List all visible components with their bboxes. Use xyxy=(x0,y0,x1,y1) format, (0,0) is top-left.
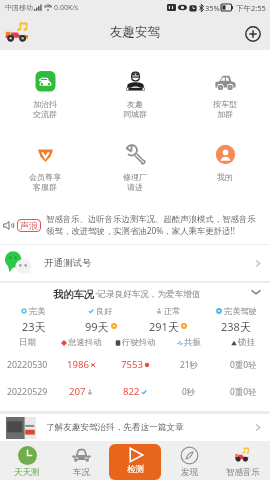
button[interactable]: 声浪 xyxy=(3,206,268,244)
staticText: 207 xyxy=(69,385,86,398)
staticText: 日期 xyxy=(19,337,36,348)
staticText: 1986 xyxy=(67,358,89,371)
staticText: 7553 xyxy=(121,358,143,371)
staticText: ·记录良好车况，为爱车增值 xyxy=(95,288,201,300)
staticText: 领驾，改进驾驶，实测省油20%，家人乘车更舒适!! xyxy=(46,225,235,236)
button[interactable]: Add xyxy=(245,26,261,42)
staticText: 声浪 xyxy=(20,220,38,231)
staticText: 我的 xyxy=(217,172,233,182)
button[interactable]: 修理厂 xyxy=(90,123,180,195)
staticText: 完美驾驶 xyxy=(224,306,257,316)
button[interactable]: 了解友趣安驾治抖，先看这一篇文章 xyxy=(6,414,262,441)
staticText: 0秒 xyxy=(182,386,196,397)
staticText: 智感音乐 xyxy=(226,467,260,478)
staticText: 21秒 xyxy=(180,359,198,370)
staticText: 良好 xyxy=(96,306,113,316)
button[interactable]: 发现 xyxy=(162,441,216,480)
staticText: 0重0轻 xyxy=(230,386,257,397)
button[interactable]: 按车型 xyxy=(180,50,270,123)
staticText: 同城群 xyxy=(123,109,147,119)
staticText: 完美 xyxy=(29,306,46,316)
staticText: 0重0轻 xyxy=(230,359,257,370)
button[interactable]: 我的 xyxy=(180,123,270,195)
button[interactable]: Collapse xyxy=(250,288,262,296)
staticText: 请进 xyxy=(127,182,143,192)
staticText: 智感音乐、边听音乐边测车况、超酷声浪模式，智感音乐 xyxy=(46,214,256,225)
staticText: 怠速抖动 xyxy=(68,337,102,348)
staticText: 加治抖 xyxy=(33,99,57,109)
staticText: 共振 xyxy=(184,337,201,348)
staticText: 99天 xyxy=(85,319,109,333)
staticText: 交流群 xyxy=(33,109,57,119)
staticText: 车况 xyxy=(73,467,90,478)
button[interactable]: 会员尊享 xyxy=(0,123,90,195)
staticText: 友趣安驾 xyxy=(110,24,160,40)
staticText: 了解友趣安驾治抖，先看这一篇文章 xyxy=(46,422,184,433)
staticText: 发现 xyxy=(181,467,198,478)
staticText: 按车型 xyxy=(213,99,237,109)
staticText: 修理厂 xyxy=(123,172,147,182)
button[interactable]: 车况 xyxy=(54,441,108,480)
staticText: 开通测试号 xyxy=(44,257,92,269)
button[interactable]: 天天测 xyxy=(0,441,54,480)
staticText: 客服群 xyxy=(33,182,57,192)
button[interactable]: 加治抖 xyxy=(0,50,90,123)
staticText: 23天 xyxy=(22,319,46,333)
staticText: 我的车况 xyxy=(53,288,94,301)
staticText: 加群 xyxy=(217,109,233,119)
button[interactable]: 20220530 xyxy=(0,351,270,378)
button[interactable]: 智感音乐 xyxy=(216,441,270,480)
staticText: 检测 xyxy=(127,464,144,475)
staticText: 锁挂 xyxy=(238,337,255,348)
staticText: 35% xyxy=(205,3,220,13)
staticText: 行驶抖动 xyxy=(122,337,156,348)
staticText: 下午2:55 xyxy=(236,3,266,13)
staticText: 0.00K/s xyxy=(54,3,79,13)
staticText: 822 xyxy=(123,385,140,398)
button[interactable]: 20220529 xyxy=(0,378,270,405)
staticText: 238天 xyxy=(221,319,251,333)
staticText: 正常 xyxy=(164,306,181,316)
staticText: 天天测 xyxy=(14,467,40,478)
staticText: 友趣 xyxy=(127,99,143,109)
button[interactable]: 检测 xyxy=(109,444,161,480)
staticText: 中国移动 xyxy=(5,3,33,12)
staticText: 会员尊享 xyxy=(29,172,61,182)
staticText: 20220530 xyxy=(7,359,48,371)
staticText: 291天 xyxy=(149,319,179,333)
staticText: 20220529 xyxy=(7,386,48,398)
button[interactable]: 开通测试号 xyxy=(4,245,262,281)
button[interactable]: 友趣 xyxy=(90,50,180,123)
